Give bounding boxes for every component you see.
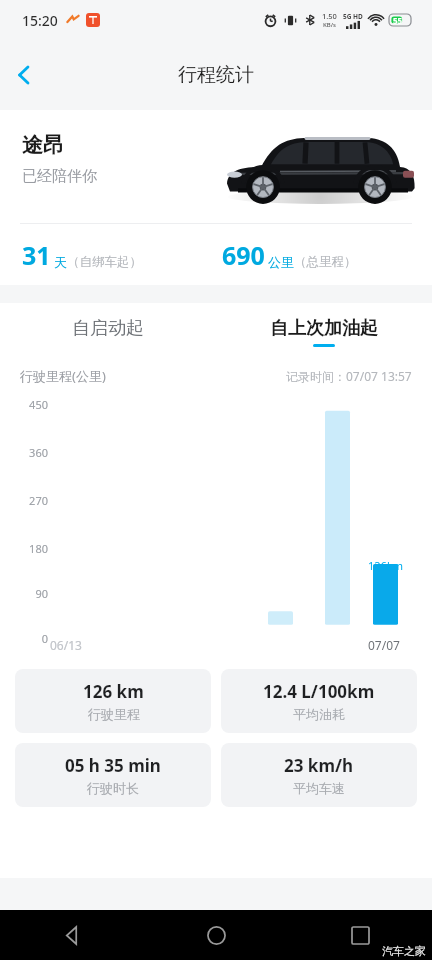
staticText: KB/s bbox=[323, 21, 336, 29]
staticText: （自绑车起） bbox=[67, 254, 142, 270]
staticText: 行程统计 bbox=[178, 63, 254, 87]
button[interactable]: 12.4 L/100km bbox=[221, 669, 417, 733]
staticText: 180 bbox=[0, 541, 48, 556]
staticText: 平均油耗 bbox=[293, 706, 345, 722]
staticText: 行驶时长 bbox=[87, 780, 139, 796]
staticText: （总里程） bbox=[294, 254, 357, 270]
staticText: 126km bbox=[368, 558, 404, 573]
staticText: 5G bbox=[343, 12, 352, 21]
staticText: 23 km/h bbox=[284, 754, 354, 777]
staticText: 0 bbox=[0, 631, 48, 646]
staticText: 途昂 bbox=[22, 132, 64, 158]
staticText: 06/13 bbox=[50, 637, 82, 653]
staticText: 15:20 bbox=[22, 11, 58, 30]
staticText: 自上次加油起 bbox=[270, 317, 378, 340]
staticText: 记录时间：07/07 13:57 bbox=[286, 368, 412, 384]
staticText: 360 bbox=[0, 445, 48, 460]
staticText: 55 bbox=[393, 15, 403, 26]
staticText: 90 bbox=[0, 586, 48, 601]
staticText: 05 h 35 min bbox=[65, 754, 161, 777]
staticText: 公里 bbox=[268, 254, 294, 270]
staticText: 天 bbox=[54, 254, 67, 270]
button[interactable]: 23 km/h bbox=[221, 743, 417, 807]
staticText: 690 bbox=[222, 238, 265, 272]
staticText: 270 bbox=[0, 493, 48, 508]
staticText: 自启动起 bbox=[72, 317, 144, 340]
staticText: 平均车速 bbox=[293, 780, 345, 796]
button[interactable]: 05 h 35 min bbox=[15, 743, 211, 807]
staticText: 汽车之家 bbox=[382, 944, 426, 958]
staticText: 1.50 bbox=[322, 11, 337, 21]
staticText: 450 bbox=[0, 397, 48, 412]
staticText: 行驶里程(公里) bbox=[20, 367, 106, 385]
staticText: 12.4 L/100km bbox=[263, 680, 375, 703]
staticText: HD bbox=[353, 12, 363, 21]
staticText: 已经陪伴你 bbox=[22, 167, 97, 186]
button[interactable]: Recent apps bbox=[288, 910, 432, 960]
staticText: 07/07 bbox=[368, 637, 400, 653]
staticText: 31 bbox=[22, 238, 51, 272]
button[interactable]: 126 km bbox=[15, 669, 211, 733]
button[interactable]: Back bbox=[0, 910, 144, 960]
staticText: 126 km bbox=[83, 680, 144, 703]
button[interactable]: Back bbox=[0, 51, 48, 99]
staticText: 行驶里程 bbox=[88, 706, 140, 722]
button[interactable]: Home bbox=[144, 910, 288, 960]
button[interactable]: 自上次加油起 bbox=[216, 303, 432, 361]
button[interactable]: 自启动起 bbox=[0, 303, 216, 361]
